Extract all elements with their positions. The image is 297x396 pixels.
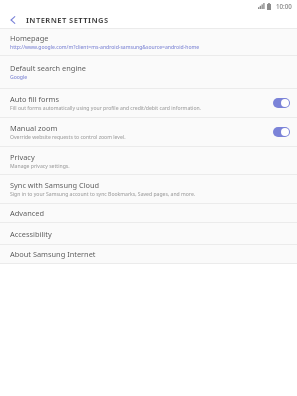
staticText: http://www.google.com/m?client=ms-androi…: [10, 44, 200, 51]
staticText: Privacy: [10, 152, 35, 162]
staticText: Google: [10, 74, 28, 81]
staticText: Default search engine: [10, 63, 87, 73]
staticText: Override website requests to control zoo…: [10, 134, 126, 141]
button[interactable]: Privacy: [0, 147, 297, 174]
button[interactable]: Toggle, on: [273, 127, 290, 137]
button[interactable]: Advanced: [0, 204, 297, 222]
button[interactable]: Back: [0, 11, 26, 28]
staticText: Manual zoom: [10, 123, 58, 133]
staticText: Sync with Samsung Cloud: [10, 180, 100, 190]
button[interactable]: Sync with Samsung Cloud: [0, 175, 297, 203]
button[interactable]: Accessibility: [0, 223, 297, 244]
button[interactable]: Toggle, on: [273, 98, 290, 108]
staticText: Advanced: [10, 208, 44, 218]
button[interactable]: Homepage: [0, 29, 297, 55]
button[interactable]: About Samsung Internet: [0, 245, 297, 263]
staticText: 10:00: [276, 2, 292, 10]
staticText: Manage privacy settings.: [10, 163, 70, 170]
staticText: INTERNET SETTINGS: [26, 15, 109, 25]
staticText: About Samsung Internet: [10, 249, 96, 259]
staticText: Homepage: [10, 33, 49, 43]
staticText: Auto fill forms: [10, 94, 60, 104]
staticText: Sign in to your Samsung account to sync …: [10, 191, 196, 198]
staticText: Fill out forms automatically using your …: [10, 105, 201, 112]
button[interactable]: Manual zoom: [0, 118, 297, 146]
staticText: Accessibility: [10, 229, 52, 239]
button[interactable]: Auto fill forms: [0, 89, 297, 117]
button[interactable]: Default search engine: [0, 56, 297, 88]
